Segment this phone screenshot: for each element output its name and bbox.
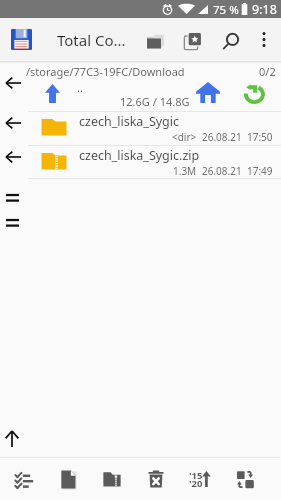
- staticText: czech_liska_Sygic: [79, 113, 180, 130]
- button[interactable]: Menu: [6, 193, 19, 202]
- button[interactable]: More options: [250, 25, 278, 53]
- button[interactable]: Compress: [91, 458, 133, 500]
- staticText: 26.08.21: [202, 130, 242, 144]
- button[interactable]: App icon: [11, 29, 32, 50]
- button[interactable]: Select files: [3, 458, 45, 500]
- staticText: '20: [189, 477, 203, 490]
- staticText: '15: [189, 469, 203, 482]
- staticText: 12.6G / 14.8G: [120, 94, 190, 109]
- button[interactable]: Refresh: [244, 83, 265, 104]
- button[interactable]: New file: [47, 458, 89, 500]
- button[interactable]: Back: [5, 77, 21, 89]
- button[interactable]: Up one level: [45, 84, 60, 103]
- staticText: <dir>: [172, 130, 197, 144]
- button[interactable]: Delete: [135, 458, 177, 500]
- button[interactable]: Home: [196, 82, 220, 103]
- button[interactable]: Exchange panels: [224, 458, 266, 500]
- staticText: 0/2: [259, 64, 276, 79]
- staticText: 1.3M: [173, 164, 197, 178]
- staticText: 9:18: [252, 1, 277, 18]
- button[interactable]: Search: [214, 25, 246, 57]
- button[interactable]: Sort order: [179, 458, 221, 500]
- button[interactable]: Menu: [6, 218, 19, 227]
- staticText: 26.08.21: [202, 164, 242, 178]
- staticText: 17:50: [247, 130, 273, 144]
- staticText: 17:49: [247, 164, 273, 178]
- button[interactable]: czech_liska_Sygic: [0, 111, 281, 145]
- staticText: 75 %: [213, 2, 239, 18]
- button[interactable]: czech_liska_Sygic.zip: [0, 145, 281, 179]
- staticText: czech_liska_Sygic.zip: [79, 147, 200, 164]
- button[interactable]: Bookmarks: [177, 25, 209, 57]
- button[interactable]: Open folders: [139, 25, 171, 57]
- staticText: ..: [77, 80, 83, 95]
- button[interactable]: Scroll up: [5, 431, 19, 447]
- staticText: Total Co...: [57, 30, 126, 50]
- staticText: /storage/77C3-19FC/Download: [26, 64, 185, 79]
